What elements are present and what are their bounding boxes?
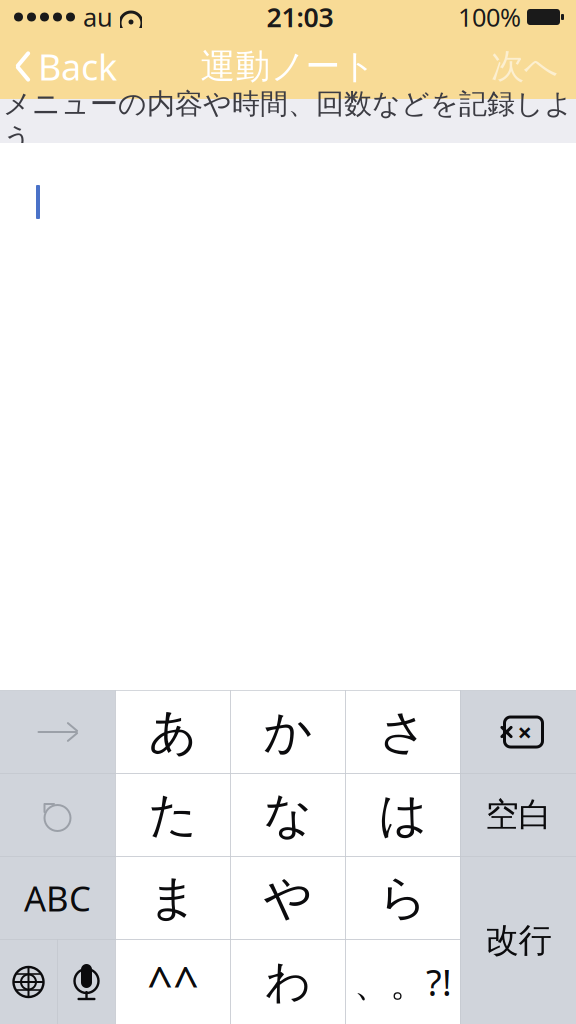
button[interactable]: さ: [345, 690, 460, 773]
staticText: Back: [38, 43, 117, 90]
staticText: は: [378, 785, 427, 844]
staticText: au: [83, 0, 113, 34]
staticText: な: [263, 785, 312, 844]
staticText: メニューの内容や時間、回数などを記録しよう: [3, 87, 573, 155]
staticText: か: [263, 702, 312, 761]
button[interactable]: 、。?!: [345, 939, 460, 1024]
staticText: 空白: [485, 794, 551, 835]
staticText: ^^: [147, 952, 199, 1012]
button[interactable]: 改行: [460, 856, 576, 1024]
button[interactable]: や: [230, 856, 345, 939]
button[interactable]: Dictation: [57, 939, 115, 1024]
staticText: た: [148, 785, 197, 844]
button[interactable]: か: [230, 690, 345, 773]
staticText: 改行: [485, 920, 551, 961]
staticText: 、。?!: [354, 958, 452, 1006]
staticText: ま: [148, 868, 197, 927]
button[interactable]: た: [115, 773, 230, 856]
button[interactable]: あ: [115, 690, 230, 773]
button[interactable]: ら: [345, 856, 460, 939]
button[interactable]: は: [345, 773, 460, 856]
staticText: 運動ノート: [200, 45, 375, 88]
button[interactable]: Delete: [460, 690, 576, 773]
staticText: や: [263, 868, 312, 927]
button[interactable]: Next candidate: [0, 690, 115, 773]
staticText: 21:03: [266, 0, 333, 35]
button[interactable]: ^^: [115, 939, 230, 1024]
staticText: わ: [265, 954, 311, 1010]
staticText: 100%: [458, 0, 521, 34]
button[interactable]: Undo: [0, 773, 115, 856]
button[interactable]: わ: [230, 939, 345, 1024]
button[interactable]: ABC: [0, 856, 115, 939]
button[interactable]: ま: [115, 856, 230, 939]
staticText: さ: [378, 702, 427, 761]
staticText: あ: [148, 702, 197, 761]
button[interactable]: Back: [0, 38, 127, 94]
button[interactable]: Change keyboard: [0, 939, 57, 1024]
button[interactable]: 次へ: [479, 38, 576, 94]
button[interactable]: 空白: [460, 773, 576, 856]
staticText: ×: [517, 715, 531, 749]
staticText: ABC: [24, 875, 91, 921]
button[interactable]: な: [230, 773, 345, 856]
staticText: ら: [378, 868, 427, 927]
staticText: 次へ: [491, 46, 558, 87]
